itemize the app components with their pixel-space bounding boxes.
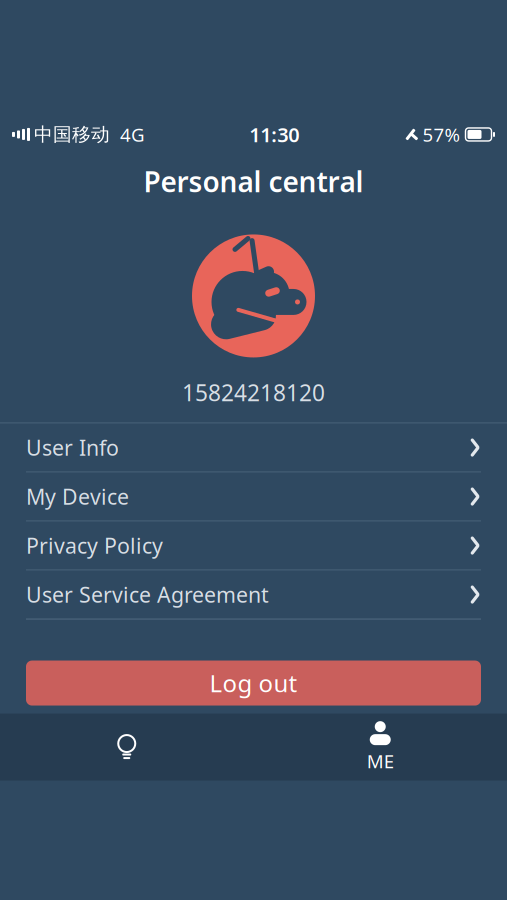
staticText: ME: [367, 749, 394, 773]
staticText: 57%: [422, 122, 460, 147]
button[interactable]: My Device: [0, 473, 507, 521]
staticText: 中国移动: [34, 123, 110, 146]
staticText: 11:30: [249, 121, 299, 148]
staticText: My Device: [26, 482, 129, 511]
button[interactable]: User Service Agreement: [0, 571, 507, 619]
button[interactable]: Privacy Policy: [0, 522, 507, 570]
staticText: User Info: [26, 433, 119, 462]
staticText: Log out: [209, 667, 297, 699]
staticText: 15824218120: [182, 377, 325, 407]
button[interactable]: User Info: [0, 424, 507, 472]
staticText: 4G: [120, 122, 145, 147]
button[interactable]: Tips: [0, 714, 253, 781]
button[interactable]: Log out: [26, 661, 481, 706]
staticText: Personal central: [143, 163, 363, 200]
button[interactable]: ME: [253, 714, 507, 781]
staticText: User Service Agreement: [26, 580, 269, 609]
staticText: Privacy Policy: [26, 531, 163, 560]
